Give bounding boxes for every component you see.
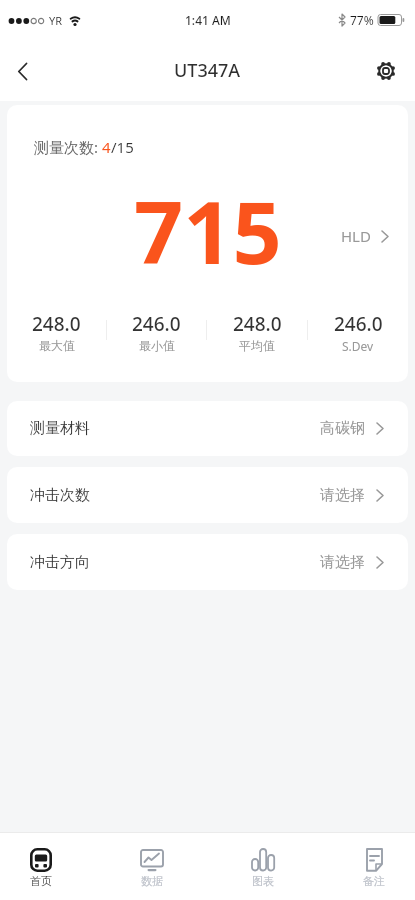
staticText: 246.0 xyxy=(334,311,383,337)
staticText: 请选择 xyxy=(320,486,365,505)
staticText: 715 xyxy=(134,172,282,289)
staticText: 冲击次数 xyxy=(30,486,90,505)
staticText: 246.0 xyxy=(132,311,181,337)
staticText: 77% xyxy=(350,12,374,28)
staticText: 测量次数: xyxy=(34,137,102,157)
staticText: YR xyxy=(49,13,63,28)
staticText: 最小值 xyxy=(139,338,175,353)
button[interactable]: 备注 xyxy=(352,833,396,900)
staticText: 平均值 xyxy=(239,338,275,353)
staticText: 冲击方向 xyxy=(30,553,90,572)
staticText: 1:41 AM xyxy=(185,12,231,28)
staticText: 备注 xyxy=(363,874,385,888)
staticText: /15 xyxy=(111,137,134,157)
staticText: 数据 xyxy=(141,874,163,888)
button[interactable] xyxy=(372,57,400,85)
button[interactable]: 首页 xyxy=(19,833,63,900)
button[interactable]: 数据 xyxy=(130,833,174,900)
staticText: 4 xyxy=(102,137,111,157)
staticText: 248.0 xyxy=(32,311,81,337)
staticText: UT347A xyxy=(174,58,241,83)
button[interactable]: 测量材料 xyxy=(7,401,408,456)
button[interactable]: HLD xyxy=(341,226,389,246)
staticText: S.Dev xyxy=(342,338,374,354)
staticText: 248.0 xyxy=(233,311,282,337)
staticText: 首页 xyxy=(30,874,52,888)
staticText: 最大值 xyxy=(39,338,75,353)
button[interactable] xyxy=(8,57,36,85)
staticText: 高碳钢 xyxy=(320,419,365,438)
button[interactable]: 图表 xyxy=(241,833,285,900)
button[interactable]: 冲击方向 xyxy=(7,534,408,590)
staticText: 测量材料 xyxy=(30,419,90,438)
staticText: 请选择 xyxy=(320,553,365,572)
staticText: HLD xyxy=(341,226,371,246)
staticText: 图表 xyxy=(252,874,274,888)
button[interactable]: 冲击次数 xyxy=(7,467,408,523)
